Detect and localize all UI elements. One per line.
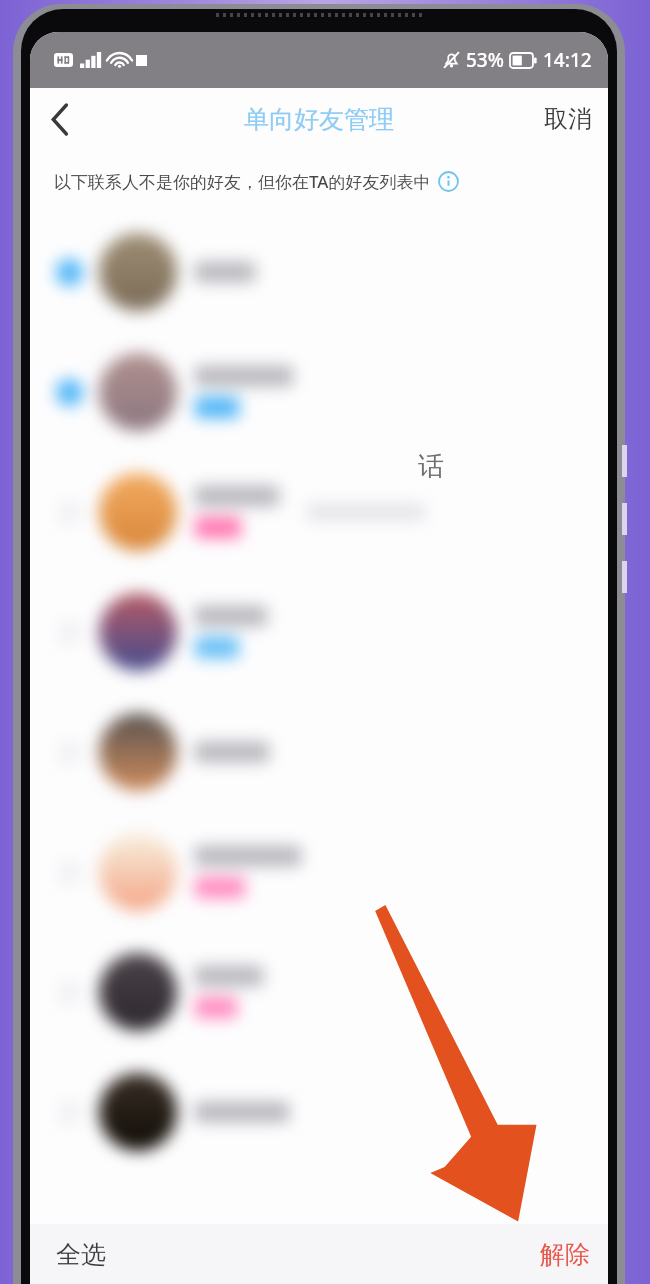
- button[interactable]: [30, 812, 608, 932]
- button[interactable]: 全选: [30, 1224, 126, 1284]
- button[interactable]: [30, 1052, 608, 1172]
- staticText: 以下联系人不是你的好友，但你在TA的好友列表中: [54, 170, 431, 193]
- staticText: 全选: [56, 1239, 106, 1270]
- button[interactable]: Info: [438, 171, 459, 192]
- button[interactable]: [30, 452, 608, 572]
- button[interactable]: 取消: [528, 88, 608, 150]
- staticText: 单向好友管理: [244, 104, 394, 135]
- button[interactable]: [30, 692, 608, 812]
- button[interactable]: [30, 572, 608, 692]
- staticText: 取消: [544, 104, 592, 134]
- staticText: 14:12: [543, 47, 592, 73]
- staticText: 53%: [466, 47, 504, 73]
- button[interactable]: [30, 932, 608, 1052]
- button[interactable]: Back: [30, 88, 90, 150]
- button[interactable]: [30, 212, 608, 332]
- staticText: 话: [418, 450, 444, 483]
- button[interactable]: 解除: [522, 1224, 608, 1284]
- staticText: 解除: [540, 1239, 590, 1270]
- button[interactable]: [30, 332, 608, 452]
